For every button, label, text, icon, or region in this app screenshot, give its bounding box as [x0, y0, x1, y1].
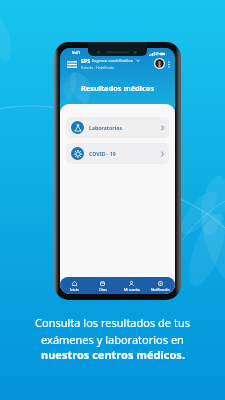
staticText: Notificación [151, 287, 170, 292]
button[interactable]: Profile [154, 58, 165, 69]
staticText: Citas [99, 287, 107, 292]
staticText: Inicio [70, 287, 79, 292]
button[interactable]: COVID - 19 [66, 143, 169, 164]
staticText: Ingreso contributivo [92, 58, 134, 63]
button[interactable]: Notificación [146, 277, 175, 294]
staticText: Resultados médicos [60, 83, 175, 93]
button[interactable]: Menu [67, 59, 77, 69]
button[interactable]: Laboratorios [66, 117, 169, 138]
staticText: Estado : Habilitado [81, 65, 115, 70]
staticText: EPS [81, 57, 90, 64]
staticText: COVID - 19 [89, 150, 116, 157]
button[interactable]: More options [167, 59, 171, 69]
button[interactable]: Citas [88, 277, 117, 294]
staticText: Mi cuenta [124, 287, 140, 292]
staticText: nuestros centros médicos. [41, 347, 185, 362]
staticText: Consulta los resultados de tus [35, 315, 190, 330]
staticText: Laboratorios [89, 124, 123, 131]
button[interactable]: Mi cuenta [117, 277, 146, 294]
button[interactable]: Inicio [60, 277, 88, 294]
staticText: 9:41 [72, 50, 81, 56]
staticText: exámenes y laboratorios en [41, 332, 184, 347]
